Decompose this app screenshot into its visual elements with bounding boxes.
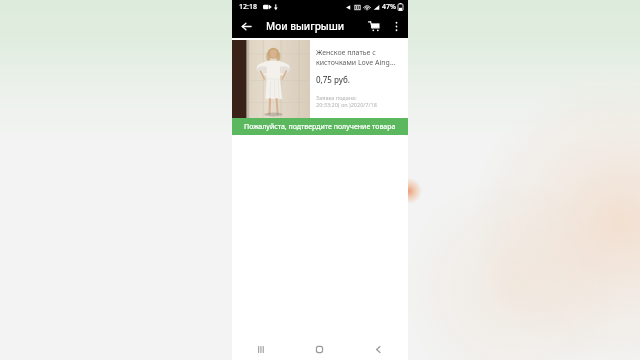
staticText: Пожалуйста, подтвердите получение товара [244,122,396,132]
button[interactable]: Пожалуйста, подтвердите получение товара [232,118,408,135]
button[interactable]: Главный экран [290,338,349,360]
staticText: Женское платье с кисточками Love Aing... [316,48,404,68]
button[interactable]: Ещё [387,17,405,35]
staticText: 20:33:20( on )2020/7/18 [316,101,377,108]
staticText: 12:18 [239,2,257,12]
staticText: 47% [382,2,396,12]
staticText: Мои выигрыши [266,19,345,33]
button[interactable]: Недавние [232,338,290,360]
staticText: Заявка подана: [316,94,357,101]
button[interactable]: Назад [349,338,408,360]
button[interactable]: Корзина [364,16,384,36]
staticText: 0,75 руб. [316,74,350,85]
button[interactable]: Назад [236,16,256,36]
button[interactable]: Женское платье с кисточками Love Aing... [232,40,408,135]
